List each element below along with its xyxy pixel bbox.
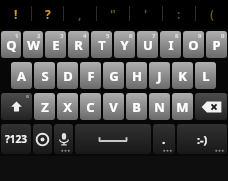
button[interactable]: O xyxy=(183,31,204,58)
button[interactable]: J xyxy=(149,62,170,89)
staticText: A xyxy=(17,67,26,85)
button[interactable]: V xyxy=(103,93,124,120)
staticText: ( xyxy=(210,6,215,22)
button[interactable]: T xyxy=(91,31,112,58)
button[interactable]: P xyxy=(206,31,227,58)
staticText: : xyxy=(177,6,181,22)
button[interactable]: Y xyxy=(114,31,135,58)
button[interactable]: K xyxy=(172,62,193,89)
staticText: D xyxy=(63,67,73,85)
staticText: " xyxy=(110,6,116,22)
staticText: R xyxy=(74,36,83,54)
staticText: S xyxy=(41,67,49,85)
button[interactable]: Space xyxy=(75,124,151,154)
staticText: T xyxy=(98,36,106,54)
staticText: . xyxy=(162,131,166,147)
button[interactable]: Shift xyxy=(1,93,32,120)
button[interactable]: S xyxy=(34,62,55,89)
button[interactable]: H xyxy=(126,62,147,89)
button[interactable]: G xyxy=(103,62,124,89)
staticText: :-) xyxy=(197,132,208,147)
staticText: ? xyxy=(45,6,51,22)
staticText: P xyxy=(212,36,221,54)
staticText: G xyxy=(109,67,119,85)
staticText: 8 xyxy=(175,32,179,40)
staticText: ?123 xyxy=(5,132,27,146)
button[interactable]: , xyxy=(64,0,96,27)
button[interactable]: . xyxy=(153,124,175,154)
button[interactable]: Q xyxy=(1,31,21,58)
button[interactable]: Settings xyxy=(33,124,52,154)
button[interactable]: C xyxy=(80,93,101,120)
staticText: N xyxy=(154,98,165,116)
button[interactable]: W xyxy=(23,31,43,58)
button[interactable]: F xyxy=(80,62,101,89)
button[interactable]: X xyxy=(57,93,78,120)
staticText: Q xyxy=(6,36,17,54)
staticText: 4 xyxy=(83,32,87,40)
button[interactable]: L xyxy=(195,62,216,89)
staticText: , xyxy=(78,6,82,22)
staticText: L xyxy=(202,67,210,85)
button[interactable]: " xyxy=(97,0,129,27)
staticText: 1 xyxy=(15,32,19,40)
button[interactable]: Backspace xyxy=(195,93,227,120)
staticText: U xyxy=(143,36,153,54)
staticText: ! xyxy=(14,6,18,22)
button[interactable]: D xyxy=(57,62,78,89)
button[interactable]: Z xyxy=(34,93,55,120)
staticText: 9 xyxy=(198,32,202,40)
button[interactable]: U xyxy=(137,31,158,58)
button[interactable]: N xyxy=(149,93,170,120)
staticText: C xyxy=(86,98,95,116)
button[interactable]: M xyxy=(172,93,193,120)
staticText: K xyxy=(178,67,187,85)
staticText: Y xyxy=(120,36,129,54)
staticText: 2 xyxy=(37,32,41,40)
staticText: 5 xyxy=(106,32,110,40)
button[interactable]: I xyxy=(160,31,181,58)
button[interactable]: ! xyxy=(0,0,31,27)
staticText: F xyxy=(87,67,95,85)
staticText: O xyxy=(188,36,199,54)
staticText: X xyxy=(63,98,72,116)
staticText: 0 xyxy=(221,32,225,40)
staticText: V xyxy=(109,98,118,116)
button[interactable]: ?123 xyxy=(1,124,31,154)
staticText: 6 xyxy=(129,32,133,40)
staticText: 3 xyxy=(60,32,64,40)
button[interactable]: :-) xyxy=(177,124,227,154)
button[interactable]: B xyxy=(126,93,147,120)
staticText: J xyxy=(157,67,162,85)
button[interactable]: ' xyxy=(130,0,162,27)
staticText: M xyxy=(176,98,189,116)
staticText: 7 xyxy=(152,32,156,40)
staticText: H xyxy=(132,67,142,85)
button[interactable]: E xyxy=(45,31,66,58)
staticText: Z xyxy=(41,98,49,116)
button[interactable]: ( xyxy=(196,0,228,27)
button[interactable]: R xyxy=(68,31,89,58)
staticText: B xyxy=(132,98,141,116)
button[interactable]: A xyxy=(11,62,32,89)
button[interactable]: Voice input xyxy=(54,124,73,154)
staticText: E xyxy=(52,36,60,54)
staticText: W xyxy=(27,36,40,54)
button[interactable]: ? xyxy=(32,0,63,27)
staticText: ' xyxy=(144,6,148,22)
staticText: I xyxy=(168,36,174,54)
button[interactable]: : xyxy=(163,0,195,27)
